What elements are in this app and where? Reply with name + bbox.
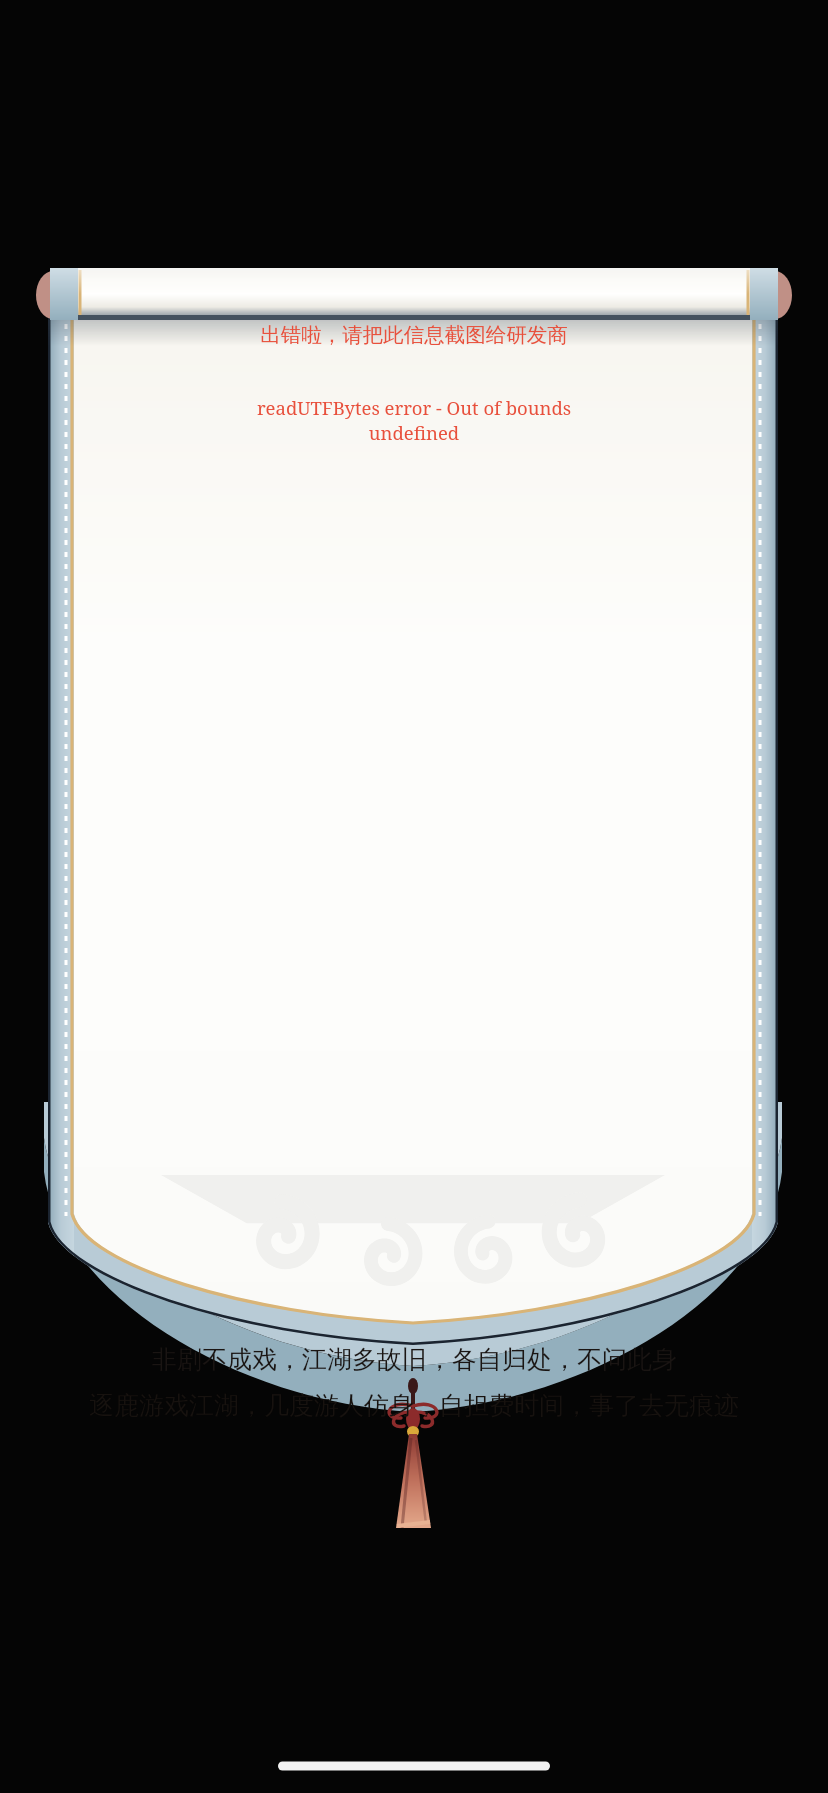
- staticText: 逐鹿游戏江湖，几度游人仿身，自担费时间，事了去无痕迹: [89, 1390, 739, 1421]
- staticText: 出错啦，请把此信息截图给研发商: [260, 322, 568, 348]
- staticText: 非剧不成戏，江湖多故旧，各自归处，不问此身: [152, 1344, 677, 1375]
- staticText: readUTFBytes error - Out of bounds undef…: [70, 395, 758, 445]
- button[interactable]: Error report: [0, 322, 828, 445]
